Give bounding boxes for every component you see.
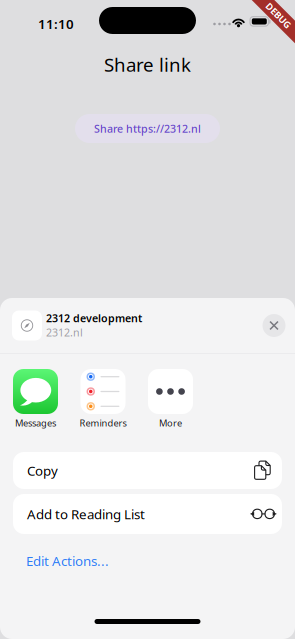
staticText: DEBUG <box>257 23 289 35</box>
staticText: Reminders <box>79 417 126 429</box>
button[interactable]: Copy <box>13 452 282 489</box>
button[interactable]: Add to Reading List <box>13 494 282 534</box>
staticText: Share link <box>104 52 191 77</box>
staticText: Copy <box>27 462 58 479</box>
staticText: 2312 development <box>46 311 142 325</box>
button[interactable]: Messages <box>13 369 58 429</box>
staticText: More <box>159 417 182 429</box>
staticText: Messages <box>15 417 56 429</box>
button[interactable]: More <box>148 369 193 429</box>
button[interactable]: Close <box>258 309 290 341</box>
button[interactable]: Reminders <box>80 369 125 429</box>
staticText: Add to Reading List <box>27 505 145 523</box>
staticText: 2312.nl <box>46 325 83 339</box>
staticText: Edit Actions... <box>26 552 109 570</box>
staticText: 11:10 <box>38 15 74 33</box>
staticText: Share https://2312.nl <box>94 121 201 136</box>
button[interactable]: Edit Actions... <box>18 545 117 577</box>
button[interactable]: Share https://2312.nl <box>75 114 220 143</box>
